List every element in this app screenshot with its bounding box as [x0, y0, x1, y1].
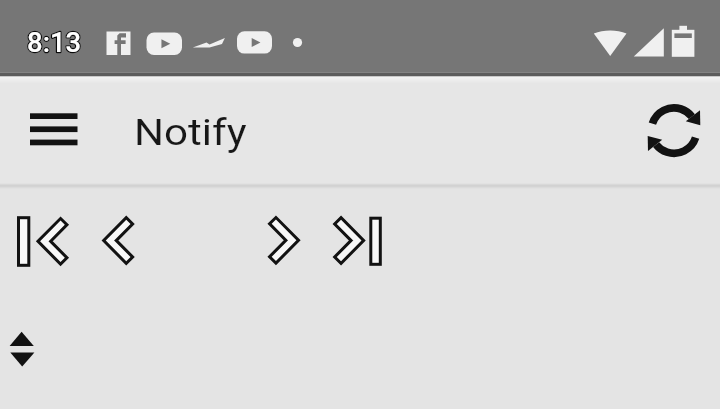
button[interactable]: Fast forward: [262, 207, 310, 275]
staticText: 8:13: [27, 26, 82, 58]
button[interactable]: Skip to previous: [10, 207, 80, 275]
button[interactable]: Open navigation drawer: [12, 95, 96, 167]
staticText: 8:13: [27, 26, 82, 58]
button[interactable]: Expand: [4, 327, 40, 371]
button[interactable]: Refresh: [638, 95, 710, 167]
button[interactable]: Rewind: [96, 207, 144, 275]
button[interactable]: Skip to next: [328, 207, 390, 275]
staticText: Notify: [134, 112, 247, 154]
